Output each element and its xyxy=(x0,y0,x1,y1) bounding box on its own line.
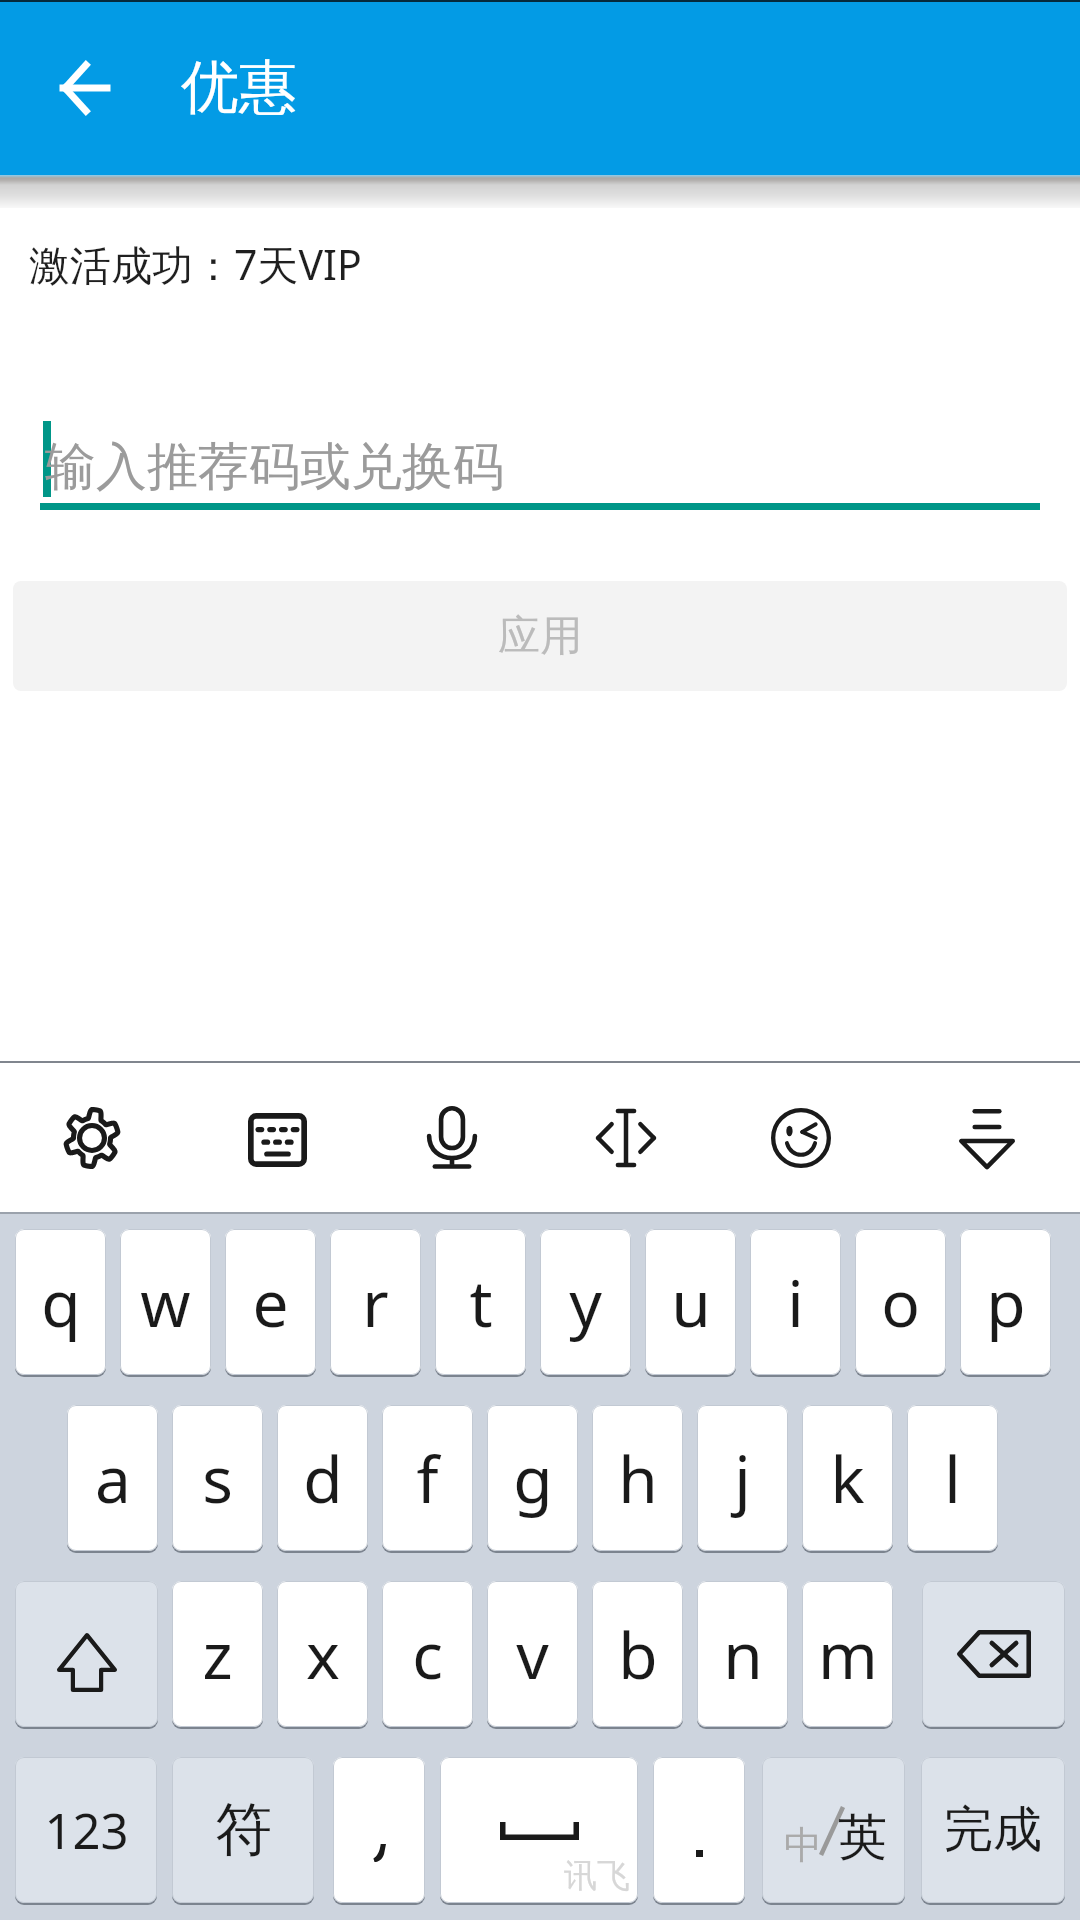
button[interactable]: 完成 xyxy=(921,1757,1065,1903)
staticText: f xyxy=(416,1435,439,1522)
staticText: q xyxy=(41,1259,81,1346)
staticText: x xyxy=(306,1611,340,1698)
button[interactable]: Comma xyxy=(333,1757,425,1903)
staticText: i xyxy=(787,1259,804,1346)
staticText: 应用 xyxy=(498,610,582,663)
button[interactable]: n xyxy=(697,1581,788,1727)
button[interactable]: r xyxy=(330,1229,421,1375)
staticText: g xyxy=(513,1435,553,1522)
button[interactable]: u xyxy=(645,1229,736,1375)
staticText: u xyxy=(671,1259,711,1346)
button[interactable]: l xyxy=(907,1405,998,1551)
staticText: c xyxy=(412,1611,443,1698)
button[interactable]: d xyxy=(277,1405,368,1551)
button[interactable]: h xyxy=(592,1405,683,1551)
staticText: z xyxy=(202,1611,233,1698)
button[interactable]: o xyxy=(855,1229,946,1375)
staticText: k xyxy=(830,1435,865,1522)
button[interactable]: y xyxy=(540,1229,631,1375)
button[interactable]: Period xyxy=(653,1757,745,1903)
button[interactable]: 符 xyxy=(172,1757,314,1903)
staticText: o xyxy=(881,1259,920,1346)
staticText: r xyxy=(362,1259,389,1346)
staticText: h xyxy=(618,1435,658,1522)
button[interactable]: v xyxy=(487,1581,578,1727)
staticText: m xyxy=(818,1611,878,1698)
button[interactable]: w xyxy=(120,1229,211,1375)
button[interactable]: e xyxy=(225,1229,316,1375)
staticText: e xyxy=(252,1259,289,1346)
button[interactable]: c xyxy=(382,1581,473,1727)
button[interactable]: s xyxy=(172,1405,263,1551)
staticText: p xyxy=(986,1259,1026,1346)
button[interactable]: Emoji xyxy=(747,1084,855,1192)
button[interactable]: Move cursor xyxy=(572,1084,680,1192)
button[interactable]: z xyxy=(172,1581,263,1727)
staticText: 讯飞 xyxy=(564,1855,630,1897)
button[interactable]: m xyxy=(802,1581,893,1727)
button[interactable]: q xyxy=(15,1229,106,1375)
staticText: 激活成功：7天VIP xyxy=(29,236,362,292)
button[interactable]: Settings xyxy=(38,1084,146,1192)
staticText: a xyxy=(95,1435,131,1522)
staticText: w xyxy=(140,1259,191,1346)
button[interactable]: 123 xyxy=(15,1757,157,1903)
button[interactable]: j xyxy=(697,1405,788,1551)
button[interactable]: Hide keyboard xyxy=(933,1084,1041,1192)
button[interactable]: b xyxy=(592,1581,683,1727)
button[interactable]: t xyxy=(435,1229,526,1375)
button[interactable]: Backspace xyxy=(922,1581,1065,1727)
button[interactable]: Space xyxy=(440,1757,638,1903)
staticText: v xyxy=(516,1611,549,1698)
button[interactable]: Back xyxy=(36,40,132,136)
staticText: y xyxy=(569,1259,602,1346)
button[interactable]: k xyxy=(802,1405,893,1551)
button[interactable]: f xyxy=(382,1405,473,1551)
button[interactable]: a xyxy=(67,1405,158,1551)
button[interactable]: Switch Chinese English xyxy=(762,1757,905,1903)
staticText: 优惠 xyxy=(181,51,297,124)
staticText: 完成 xyxy=(944,1799,1042,1861)
button[interactable]: 输入推荐码或兑换码 xyxy=(40,412,1040,510)
staticText: l xyxy=(944,1435,961,1522)
staticText: 中 xyxy=(784,1821,822,1869)
staticText: s xyxy=(202,1435,233,1522)
staticText: b xyxy=(618,1611,658,1698)
button[interactable]: i xyxy=(750,1229,841,1375)
staticText: j xyxy=(734,1435,751,1522)
staticText: 123 xyxy=(44,1797,129,1864)
staticText: 符 xyxy=(215,1794,272,1866)
button[interactable]: Voice input xyxy=(398,1084,506,1192)
staticText: d xyxy=(303,1435,343,1522)
button[interactable]: x xyxy=(277,1581,368,1727)
staticText: 英 xyxy=(838,1807,887,1869)
staticText: 输入推荐码或兑换码 xyxy=(45,435,504,499)
staticText: n xyxy=(723,1611,763,1698)
button[interactable]: Keyboard layout xyxy=(223,1084,331,1192)
button[interactable]: Shift xyxy=(15,1581,158,1727)
button[interactable]: 应用 xyxy=(13,581,1067,691)
staticText: t xyxy=(469,1259,493,1346)
button[interactable]: g xyxy=(487,1405,578,1551)
button[interactable]: p xyxy=(960,1229,1051,1375)
